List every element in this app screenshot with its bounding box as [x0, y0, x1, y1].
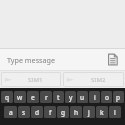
- staticText: f: [49, 108, 52, 117]
- staticText: j: [88, 108, 90, 117]
- staticText: e: [31, 93, 35, 102]
- staticText: k: [100, 108, 104, 117]
- button[interactable]: j: [83, 106, 95, 118]
- button[interactable]: o: [101, 91, 112, 103]
- staticText: y: [69, 93, 73, 102]
- button[interactable]: u: [77, 91, 88, 103]
- staticText: h: [74, 108, 79, 117]
- button[interactable]: Type message: [0, 49, 102, 70]
- button[interactable]: f: [44, 106, 56, 118]
- button[interactable]: r: [40, 91, 52, 103]
- staticText: i: [94, 93, 96, 102]
- staticText: u: [80, 93, 85, 102]
- button[interactable]: t: [53, 91, 64, 103]
- staticText: d: [35, 108, 40, 117]
- button[interactable]: i: [89, 91, 100, 103]
- staticText: SIM2: [91, 76, 106, 84]
- staticText: Type message: [7, 55, 56, 65]
- button[interactable]: e: [27, 91, 39, 103]
- button[interactable]: SIM2: [63, 72, 124, 87]
- button[interactable]: d: [31, 106, 43, 118]
- button[interactable]: w: [14, 91, 26, 103]
- staticText: a: [9, 108, 13, 117]
- staticText: l: [114, 108, 116, 117]
- staticText: s: [22, 108, 26, 117]
- button[interactable]: h: [70, 106, 82, 118]
- button[interactable]: l: [109, 106, 121, 118]
- button[interactable]: p: [113, 91, 124, 103]
- button[interactable]: SIM1: [1, 72, 61, 87]
- button[interactable]: k: [96, 106, 108, 118]
- staticText: q: [5, 93, 10, 102]
- button[interactable]: a: [4, 106, 17, 118]
- staticText: g: [61, 108, 66, 117]
- button[interactable]: q: [1, 91, 13, 103]
- staticText: r: [45, 93, 48, 102]
- staticText: w: [17, 93, 23, 102]
- button[interactable]: s: [18, 106, 30, 118]
- staticText: o: [105, 93, 109, 102]
- button[interactable]: Message templates: [102, 49, 123, 70]
- staticText: t: [57, 93, 60, 102]
- staticText: p: [116, 93, 121, 102]
- staticText: SIM1: [28, 76, 43, 84]
- button[interactable]: y: [65, 91, 76, 103]
- button[interactable]: g: [57, 106, 69, 118]
